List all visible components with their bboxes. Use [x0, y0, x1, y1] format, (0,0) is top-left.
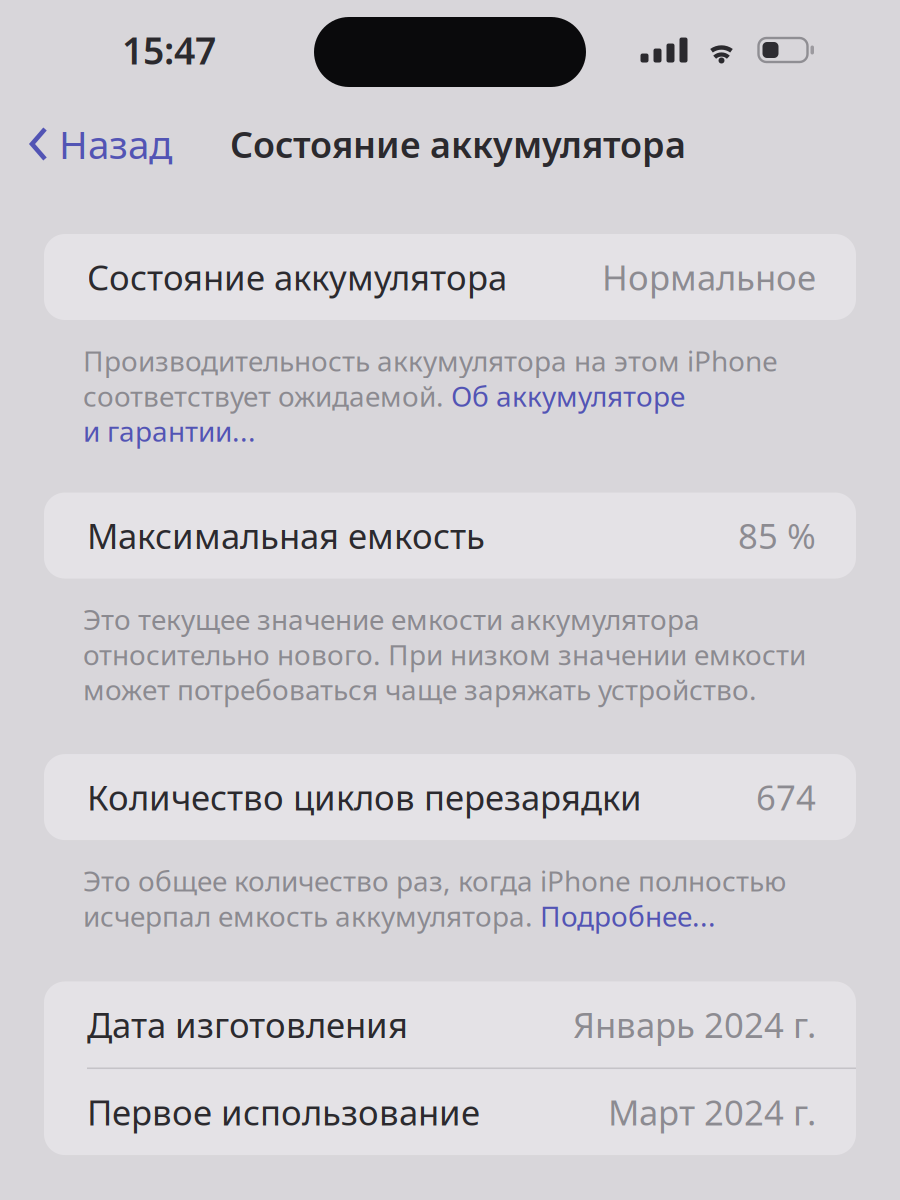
button[interactable]: Назад [0, 106, 184, 182]
button[interactable]: Подробнее... [540, 897, 716, 934]
staticText: Март 2024 г. [608, 1089, 816, 1135]
staticText: Это текущее значение емкости аккумулятор… [83, 600, 700, 638]
staticText: Производительность аккумулятора на этом … [83, 342, 778, 379]
button[interactable]: Первое использование [44, 1069, 856, 1155]
staticText: Состояние аккумулятора [87, 254, 507, 300]
staticText: Январь 2024 г. [573, 1001, 816, 1047]
button[interactable]: Состояние аккумулятора [44, 234, 856, 320]
staticText: Дата изготовления [87, 1001, 408, 1047]
staticText: относительно нового. При низком значении… [83, 636, 806, 673]
staticText: и гарантии... [83, 412, 256, 450]
button[interactable]: Об аккумуляторе [451, 377, 685, 414]
staticText: Максимальная емкость [87, 512, 485, 558]
staticText: 674 [756, 774, 816, 820]
staticText: Первое использование [87, 1089, 480, 1135]
button[interactable]: Количество циклов перезарядки [44, 754, 856, 840]
button[interactable]: и гарантии... [83, 412, 256, 450]
staticText: Об аккумуляторе [451, 377, 685, 414]
staticText: Подробнее... [540, 897, 716, 934]
button[interactable]: Дата изготовления [44, 981, 856, 1067]
staticText: 15:47 [122, 25, 216, 75]
staticText: Назад [59, 118, 172, 170]
staticText: Состояние аккумулятора [230, 120, 686, 168]
staticText: исчерпал емкость аккумулятора. [83, 897, 540, 934]
staticText: Нормальное [602, 254, 816, 300]
staticText: 85 % [738, 512, 816, 558]
button[interactable]: Максимальная емкость [44, 492, 856, 578]
staticText: Количество циклов перезарядки [87, 774, 642, 820]
staticText: соответствует ожидаемой. [83, 377, 451, 414]
staticText: может потребоваться чаще заряжать устрой… [83, 671, 757, 708]
staticText: Это общее количество раз, когда iPhone п… [83, 862, 786, 899]
